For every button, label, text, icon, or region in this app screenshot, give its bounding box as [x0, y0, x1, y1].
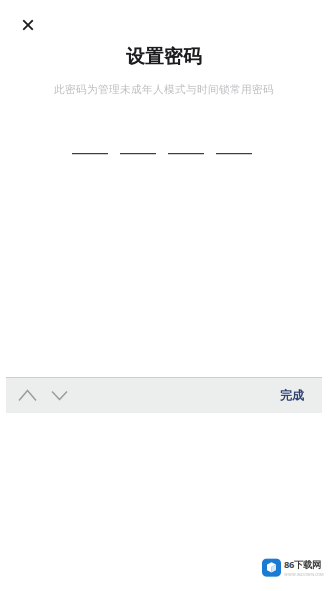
- button[interactable]: 完成: [274, 378, 310, 413]
- staticText: 完成: [280, 388, 304, 403]
- staticText: 86下载网: [284, 558, 321, 571]
- staticText: 此密码为管理未成年人模式与时间锁常用密码: [54, 83, 274, 96]
- button[interactable]: 下一项: [44, 378, 75, 413]
- button[interactable]: 关闭: [12, 12, 44, 38]
- staticText: WWW.86DOWN.COM: [284, 572, 324, 577]
- staticText: 设置密码: [126, 45, 202, 68]
- button[interactable]: 上一项: [11, 378, 44, 413]
